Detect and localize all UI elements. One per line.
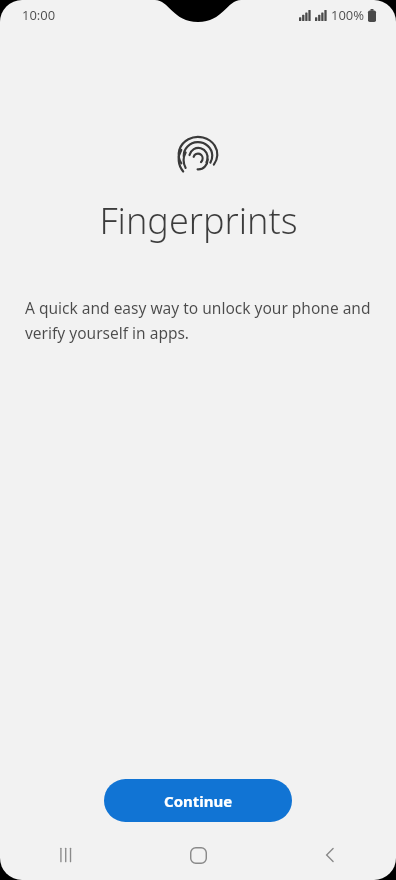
staticText: Continue: [164, 791, 233, 811]
staticText: 100%: [331, 6, 365, 24]
staticText: A quick and easy way to unlock your phon…: [25, 297, 374, 343]
button[interactable]: Home: [132, 838, 264, 872]
button[interactable]: Back: [264, 838, 396, 872]
button[interactable]: Recent apps: [0, 838, 132, 872]
staticText: Fingerprints: [99, 196, 298, 245]
button[interactable]: Continue: [104, 779, 292, 822]
staticText: 10:00: [22, 6, 56, 24]
